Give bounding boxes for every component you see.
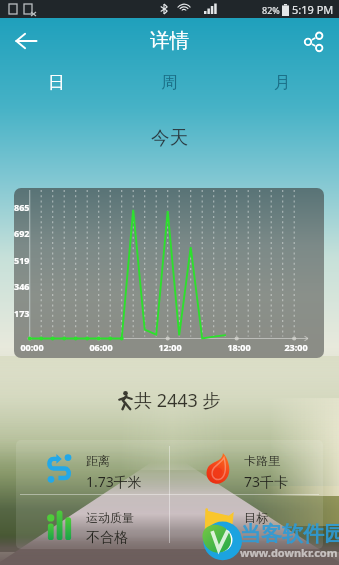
staticText: 卡路里 xyxy=(244,453,280,468)
staticText: 运动质量 xyxy=(86,510,134,525)
staticText: 周 xyxy=(161,72,178,93)
staticText: 865 xyxy=(14,201,30,213)
staticText: 共 2443 步 xyxy=(134,388,221,413)
button[interactable]: Share xyxy=(293,21,333,61)
button[interactable]: 月 xyxy=(226,63,339,101)
staticText: 18:00 xyxy=(222,341,256,353)
staticText: 今天 xyxy=(0,126,339,149)
staticText: 692 xyxy=(14,227,30,239)
staticText: 不合格 xyxy=(86,529,128,547)
button[interactable]: 目标 xyxy=(174,498,298,549)
button[interactable]: 日 xyxy=(0,63,113,101)
staticText: 12:00 xyxy=(153,341,187,353)
staticText: 5:19 PM xyxy=(292,2,334,17)
button[interactable]: 距离 xyxy=(16,440,169,496)
staticText: 当客软件园 xyxy=(240,521,339,547)
staticText: 00:00 xyxy=(15,341,49,353)
staticText: 1.73千米 xyxy=(86,472,142,491)
staticText: 82% xyxy=(262,4,280,16)
button[interactable]: Back xyxy=(6,21,46,61)
staticText: www.downkr.com xyxy=(240,545,338,560)
staticText: 距离 xyxy=(86,453,110,468)
staticText: 日 xyxy=(48,72,65,93)
staticText: 06:00 xyxy=(84,341,118,353)
staticText: 23:00 xyxy=(279,341,313,353)
staticText: 173 xyxy=(14,307,30,319)
staticText: 519 xyxy=(14,254,30,266)
staticText: 详情 xyxy=(150,28,189,53)
staticText: 73千卡 xyxy=(244,472,289,491)
staticText xyxy=(244,529,248,548)
staticText: 目标 xyxy=(244,510,268,525)
button[interactable]: 周 xyxy=(113,63,226,101)
button[interactable]: 运动质量 xyxy=(16,498,169,549)
staticText: 346 xyxy=(14,280,30,292)
staticText: 月 xyxy=(274,72,291,93)
button[interactable]: 卡路里 xyxy=(174,440,298,496)
